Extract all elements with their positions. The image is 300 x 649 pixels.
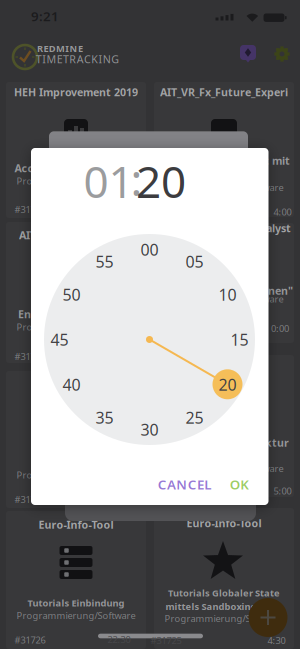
staticText: OK (230, 475, 249, 493)
staticText: 35 (95, 407, 113, 428)
staticText: Accessibility Checks QS (14, 161, 137, 175)
staticText: AIT_VR_Fx_Statistics_2 (19, 228, 133, 242)
staticText: #31726 (14, 634, 45, 646)
button[interactable]: OK (219, 468, 259, 500)
staticText: #31724 (159, 485, 190, 497)
staticText: 4:00 (273, 206, 291, 218)
button[interactable]: 01 (83, 152, 133, 210)
staticText: Programmierung/Software (164, 462, 283, 475)
staticText: Tutorials Globaler State (168, 587, 280, 599)
button[interactable]: CANCEL (149, 468, 219, 500)
staticText: Datenbankinfrastruktur (159, 435, 289, 450)
staticText: Programmierung/Software (164, 612, 283, 625)
staticText: #31719 (14, 493, 45, 506)
staticText: Intranet Update (180, 356, 267, 370)
staticText: 25 (185, 407, 203, 428)
staticText: Dokumentation (33, 373, 118, 387)
staticText: Migration der (187, 426, 261, 441)
staticText: 20 (218, 374, 236, 395)
staticText: Euro-Info-Tool (186, 516, 261, 530)
staticText: Programmierung/Software (16, 175, 135, 187)
staticText: Programmierung/Software (16, 469, 135, 481)
staticText: 05 (185, 251, 203, 272)
staticText: mittels Sandboxing üben (165, 600, 282, 613)
staticText: 30 (140, 419, 158, 440)
button[interactable] (270, 42, 294, 66)
staticText: : (130, 150, 142, 208)
staticText: AIT_VR_Checkout_Analyst (157, 221, 291, 235)
staticText: REDMINE (37, 42, 83, 55)
staticText: 9:21 (31, 7, 59, 25)
staticText: 5:00 (273, 485, 291, 497)
staticText: 4:30 (267, 634, 285, 647)
staticText: HEH Improvement 2019 (14, 85, 138, 99)
button[interactable] (236, 42, 260, 66)
staticText: 1:00 (121, 493, 139, 506)
staticText: Frontend-Zustand lernen" (155, 283, 293, 298)
staticText: 0:00 (271, 322, 289, 335)
staticText: Steuerung der (185, 273, 262, 288)
staticText: Programmierung/Software (16, 321, 135, 333)
staticText: Euro-Info-Tool (38, 517, 113, 532)
staticText: AIT_VR_Fx_Future_Experi (160, 85, 288, 99)
staticText: 01 (83, 152, 133, 210)
staticText: 10 (218, 284, 236, 305)
staticText: 45 (50, 329, 68, 350)
staticText: Abstimmung Projekt mit (158, 153, 290, 168)
staticText: Programmierung/Software (16, 609, 135, 622)
staticText: 50 (63, 284, 81, 305)
staticText: Entwicklung Backend (18, 307, 134, 321)
staticText: Tutorials Einbindung (27, 597, 124, 609)
staticText: #31725 (150, 634, 181, 647)
staticText: 00 (140, 239, 158, 260)
staticText: CANCEL (158, 475, 211, 493)
staticText: #31718 (14, 350, 45, 363)
staticText: 15 (230, 329, 248, 350)
staticText: Programmierung/Software (164, 293, 283, 305)
staticText: #31722 (14, 203, 45, 216)
staticText: 40 (63, 374, 81, 395)
staticText: Programmierung/Software (164, 181, 283, 194)
button[interactable]: 20 (136, 152, 186, 210)
staticText: 20 (136, 152, 186, 210)
staticText: TIMETRACKING (36, 52, 119, 66)
staticText: 55 (95, 251, 113, 272)
button[interactable] (248, 598, 287, 637)
staticText: 22:30 (107, 633, 130, 646)
